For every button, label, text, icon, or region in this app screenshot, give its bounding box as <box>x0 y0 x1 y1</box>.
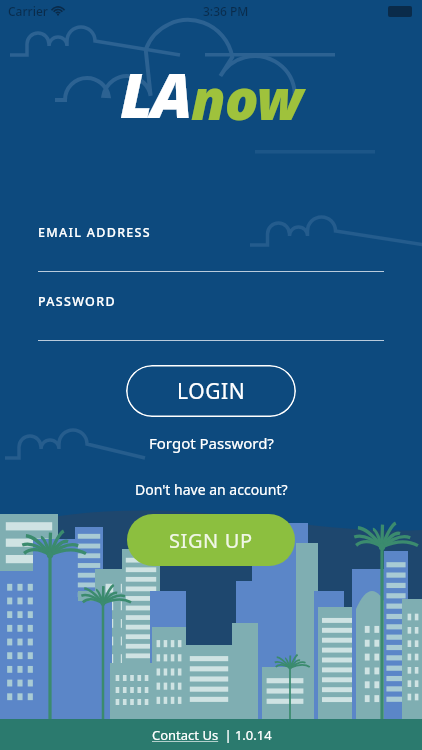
staticText: | 1.0.14 <box>221 726 272 744</box>
button[interactable]: Forgot Password? <box>139 429 284 457</box>
staticText: PASSWORD <box>38 293 116 310</box>
staticText: SIGN UP <box>169 527 253 554</box>
button[interactable]: Contact Us <box>150 724 221 746</box>
staticText: Carrier <box>8 3 48 19</box>
staticText: LA <box>120 52 191 136</box>
button[interactable]: LOGIN <box>126 365 296 417</box>
staticText: Contact Us <box>152 726 219 744</box>
staticText: LOGIN <box>177 377 246 406</box>
staticText: now <box>191 60 302 136</box>
staticText: 3:36 PM <box>203 3 249 19</box>
button[interactable]: SIGN UP <box>127 514 295 566</box>
staticText: Don't have an account? <box>135 480 288 499</box>
staticText: Forgot Password? <box>149 433 274 453</box>
staticText: EMAIL ADDRESS <box>38 224 151 241</box>
